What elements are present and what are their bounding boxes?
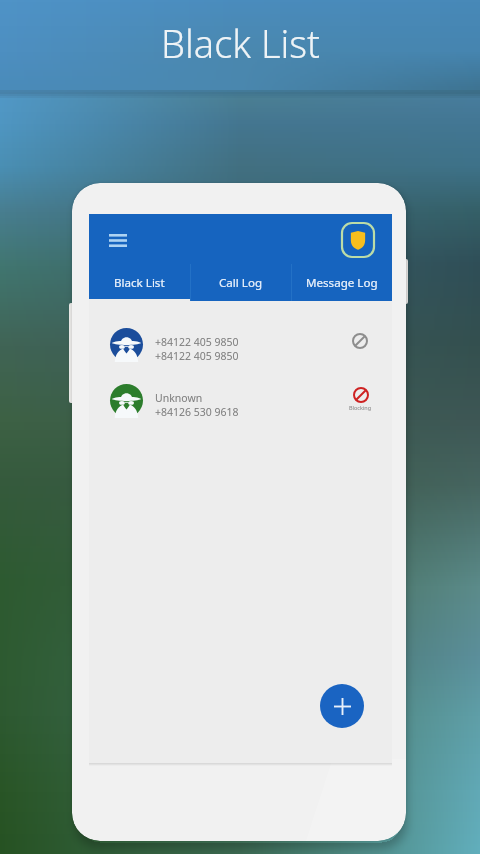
- staticText: +84122 405 9850: [155, 349, 239, 363]
- button[interactable]: Menu: [103, 225, 133, 255]
- button[interactable]: Blocking: [328, 372, 392, 428]
- staticText: Message Log: [306, 275, 378, 291]
- button[interactable]: Add: [320, 684, 364, 728]
- staticText: Blocking: [349, 404, 372, 411]
- staticText: Black List: [161, 17, 320, 69]
- staticText: Unknown: [155, 391, 203, 405]
- button[interactable]: Black List: [89, 264, 190, 301]
- button[interactable]: Call Log: [190, 264, 291, 301]
- staticText: +84126 530 9618: [155, 405, 239, 419]
- button[interactable]: +84122 405 9850: [89, 316, 392, 372]
- staticText: +84122 405 9850: [155, 335, 239, 349]
- button[interactable]: Block: [328, 316, 392, 372]
- button[interactable]: Message Log: [291, 264, 392, 301]
- staticText: Black List: [114, 275, 165, 291]
- button[interactable]: Unknown: [89, 372, 392, 428]
- staticText: Call Log: [219, 275, 263, 291]
- button[interactable]: Protection: [339, 220, 376, 259]
